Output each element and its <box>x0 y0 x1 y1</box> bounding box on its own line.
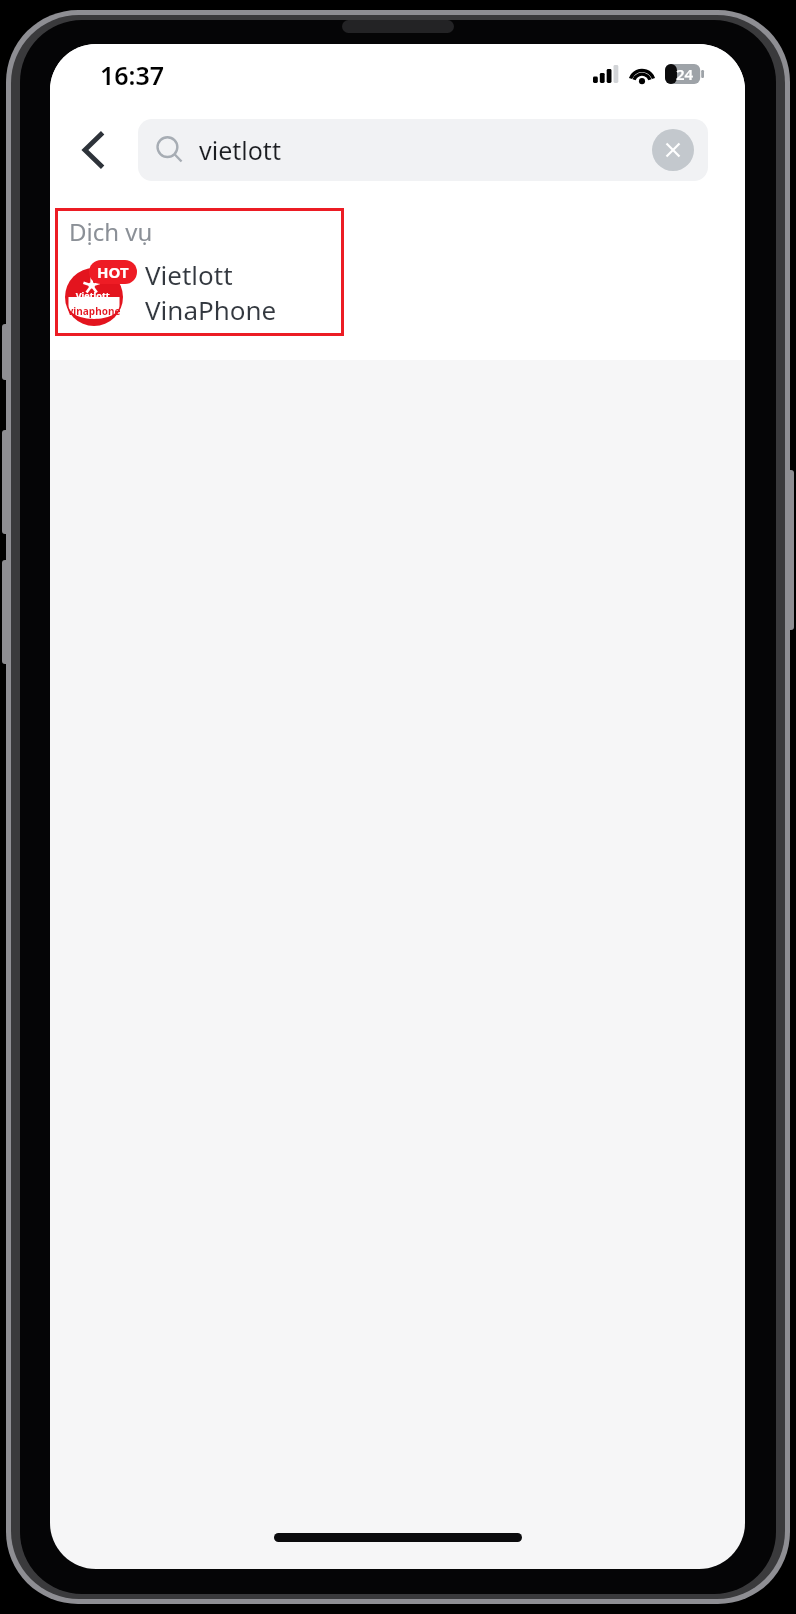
button[interactable]: Clear search <box>652 129 694 171</box>
staticText: Vietlott. <box>65 289 123 301</box>
staticText: HOT <box>97 262 129 282</box>
button[interactable]: Vietlott. <box>55 254 344 330</box>
staticText: 16:37 <box>100 58 165 92</box>
button[interactable]: vietlott <box>138 119 708 181</box>
staticText: vinaphone <box>65 304 123 318</box>
staticText: Dịch vụ <box>69 215 153 248</box>
staticText: 24 <box>676 64 694 84</box>
staticText: Vietlott VinaPhone <box>145 257 344 327</box>
staticText: vietlott <box>199 133 281 167</box>
button[interactable]: Back <box>50 102 138 198</box>
